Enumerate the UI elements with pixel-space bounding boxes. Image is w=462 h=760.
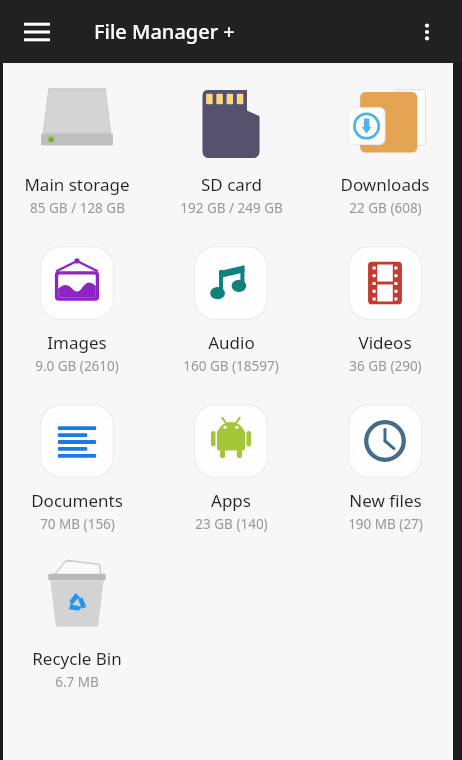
staticText: New files <box>349 489 422 512</box>
button[interactable]: Audio <box>154 235 308 377</box>
button[interactable]: Downloads <box>308 77 462 219</box>
button[interactable]: More options <box>402 7 452 57</box>
staticText: 6.7 MB <box>55 673 99 691</box>
staticText: 85 GB / 128 GB <box>30 199 125 217</box>
staticText: 9.0 GB (2610) <box>35 357 119 375</box>
staticText: 192 GB / 249 GB <box>180 199 283 217</box>
staticText: Apps <box>211 489 251 512</box>
staticText: 23 GB (140) <box>195 515 268 533</box>
staticText: Audio <box>208 331 255 354</box>
button[interactable]: Videos <box>308 235 462 377</box>
button[interactable]: Main storage <box>0 77 154 219</box>
button[interactable]: Recycle Bin <box>0 551 154 693</box>
staticText: Images <box>47 331 107 354</box>
staticText: 160 GB (18597) <box>183 357 279 375</box>
staticText: SD card <box>201 173 262 196</box>
staticText: Downloads <box>340 173 430 196</box>
staticText: File Manager + <box>94 18 235 45</box>
button[interactable]: Images <box>0 235 154 377</box>
button[interactable]: SD card <box>154 77 308 219</box>
staticText: Documents <box>31 489 123 512</box>
staticText: 70 MB (156) <box>40 515 115 533</box>
staticText: Videos <box>358 331 412 354</box>
staticText: Main storage <box>24 173 130 196</box>
staticText: 190 MB (27) <box>348 515 423 533</box>
button[interactable]: New files <box>308 393 462 535</box>
button[interactable]: Documents <box>0 393 154 535</box>
button[interactable]: Apps <box>154 393 308 535</box>
staticText: 22 GB (608) <box>349 199 422 217</box>
button[interactable]: Open navigation drawer <box>10 5 64 59</box>
staticText: Recycle Bin <box>32 647 122 670</box>
staticText: 36 GB (290) <box>349 357 422 375</box>
